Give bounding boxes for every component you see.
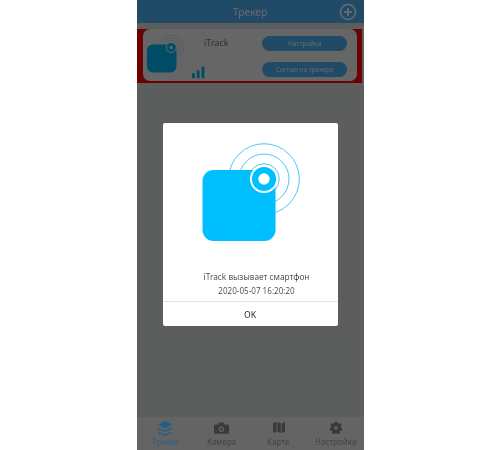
staticText: 2020-05-07 16:20:20: [169, 285, 338, 296]
staticText: Настройки: [288, 39, 322, 48]
button[interactable]: Настройки: [262, 36, 347, 51]
staticText: Трекер: [233, 5, 268, 19]
button[interactable]: Карта: [250, 417, 307, 450]
staticText: Камера: [207, 436, 237, 447]
button[interactable]: iTrack: [143, 29, 357, 81]
button[interactable]: Add tracker: [339, 3, 357, 21]
staticText: iTrack вызывает смартфон: [169, 271, 338, 282]
staticText: iTrack: [204, 36, 229, 48]
button[interactable]: Камера: [193, 417, 250, 450]
button[interactable]: Трекер: [137, 417, 193, 450]
staticText: Настройки: [315, 436, 357, 447]
staticText: Карта: [267, 436, 290, 447]
staticText: Сигнал на трекере: [276, 65, 334, 74]
staticText: OK: [244, 309, 257, 321]
button[interactable]: Настройки: [307, 417, 364, 450]
button[interactable]: OK: [163, 303, 338, 326]
staticText: Трекер: [152, 436, 179, 447]
button[interactable]: Сигнал на трекере: [262, 62, 347, 77]
